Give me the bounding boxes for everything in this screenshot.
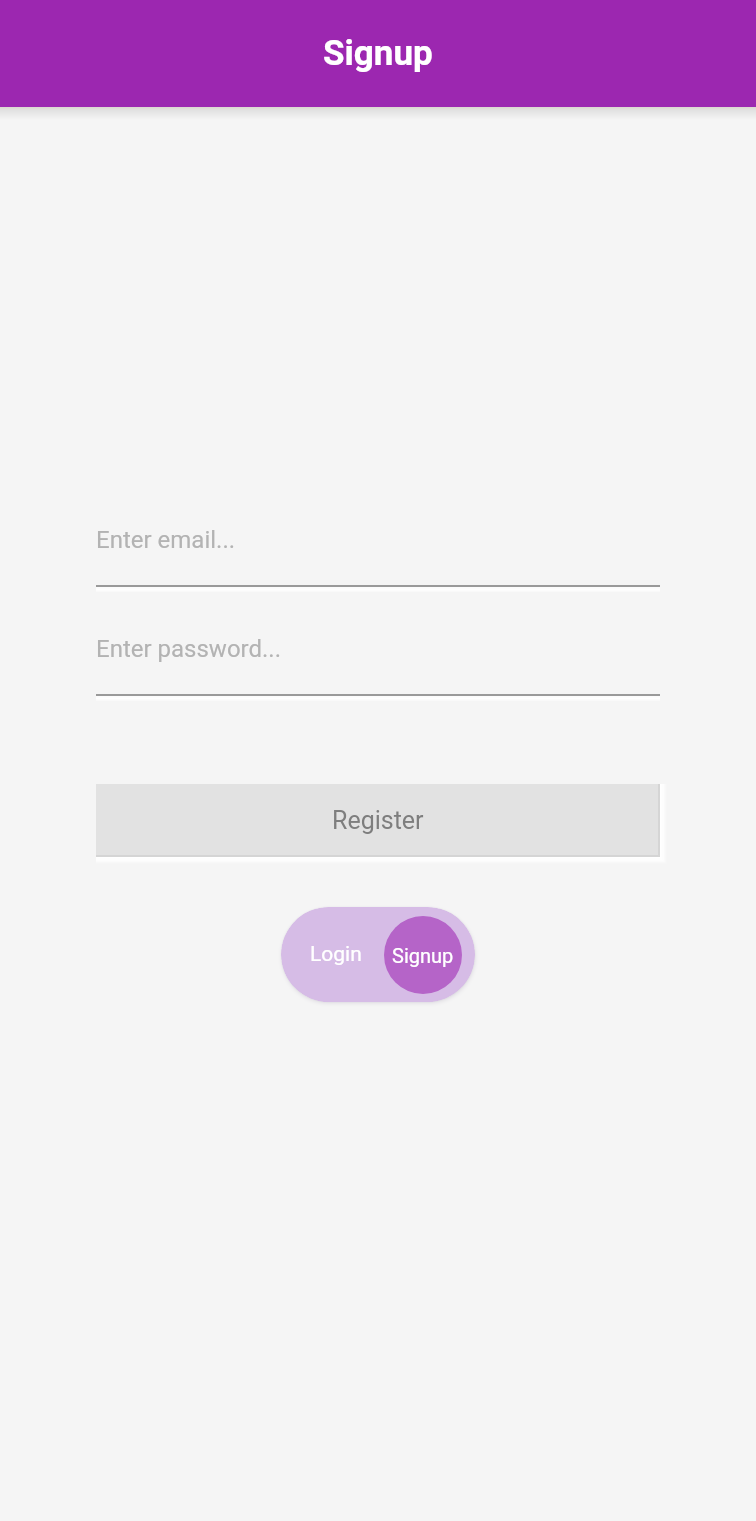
staticText: Signup <box>392 944 454 967</box>
staticText: Enter email... <box>96 526 236 554</box>
button[interactable]: Signup <box>384 916 462 994</box>
button[interactable]: Enter email... <box>96 523 660 592</box>
staticText: Login <box>310 942 362 967</box>
button[interactable]: Enter password... <box>96 632 660 701</box>
button[interactable]: Register <box>96 784 660 857</box>
staticText: Enter password... <box>96 635 282 663</box>
staticText: Signup <box>323 33 433 74</box>
staticText: Register <box>332 806 424 835</box>
button[interactable]: Login <box>281 907 391 1002</box>
